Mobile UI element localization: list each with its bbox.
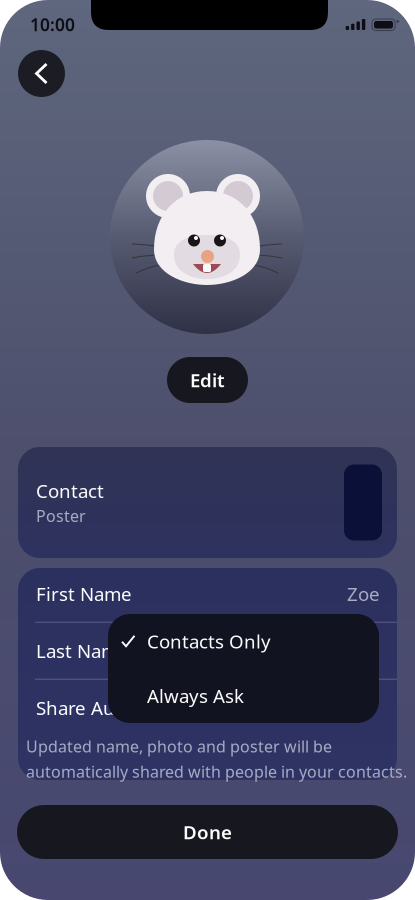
- staticText: Edit: [190, 368, 225, 392]
- staticText: automatically shared with people in your…: [26, 761, 407, 782]
- staticText: Done: [183, 820, 232, 844]
- button[interactable]: Always Ask: [108, 668, 379, 723]
- staticText: Share Automatically: [36, 695, 211, 720]
- button[interactable]: Back: [18, 50, 65, 97]
- staticText: Contact: [36, 478, 104, 503]
- button[interactable]: Contact: [18, 447, 397, 558]
- staticText: Zoe: [347, 581, 380, 606]
- button[interactable]: Last Name: [18, 623, 397, 679]
- staticText: 10:00: [30, 13, 75, 36]
- button[interactable]: Done: [17, 805, 398, 859]
- button[interactable]: First Name: [18, 566, 397, 622]
- button[interactable]: Share Automatically: [18, 680, 397, 736]
- staticText: First Name: [36, 581, 132, 606]
- staticText: Always Ask: [147, 683, 244, 708]
- button[interactable]: Contacts Only: [108, 614, 379, 668]
- button[interactable]: Edit: [167, 357, 248, 403]
- staticText: Poster: [36, 505, 86, 526]
- staticText: Updated name, photo and poster will be: [26, 736, 332, 757]
- staticText: Last Name: [36, 638, 129, 663]
- staticText: Contacts Only: [147, 629, 271, 654]
